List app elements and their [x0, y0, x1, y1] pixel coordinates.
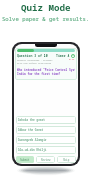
staticText: 0:42 — [69, 58, 75, 61]
button[interactable]: Ala-ud-din Khilji — [16, 146, 76, 154]
staticText: Quiz Mode — [21, 1, 71, 14]
other: Timer — [71, 54, 75, 58]
button[interactable]: Review — [36, 156, 55, 163]
staticText: Who introduced "Price Control System" in… — [17, 68, 75, 76]
staticText: Skip — [63, 158, 70, 162]
button[interactable]: Akbar the Great — [16, 126, 76, 134]
staticText: Ala-ud-din Khilji — [18, 148, 47, 152]
staticText: Akbar the Great — [18, 128, 44, 132]
staticText: Timer 4 — [56, 54, 70, 58]
button[interactable]: Aurangzeb Alamgir — [16, 136, 76, 144]
staticText: Pick one option from below — [17, 62, 52, 65]
staticText: Solve paper & get results. — [2, 15, 90, 23]
button[interactable]: Submit — [16, 156, 34, 163]
staticText: Ashoka the great — [18, 118, 45, 122]
staticText: Aurangzeb Alamgir — [18, 138, 47, 142]
staticText: Submit — [20, 158, 30, 162]
button[interactable]: Ashoka the great — [16, 116, 76, 124]
staticText: Question 3 of 10 — [17, 54, 48, 58]
staticText: General Knowledge · Economy — [17, 59, 53, 62]
staticText: Review — [41, 158, 51, 162]
button[interactable]: Skip — [57, 156, 76, 163]
